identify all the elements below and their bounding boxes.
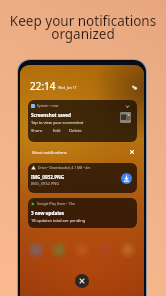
button[interactable]: Delete (69, 128, 82, 134)
staticText: Wed, Jan 17 (58, 85, 77, 90)
staticText: Tap to view your screenshot (31, 120, 84, 125)
staticText: Share (31, 128, 43, 134)
button[interactable]: Drive • Downloaded, 4.1 MB • 4m (28, 163, 137, 193)
staticText: 22:14 (30, 79, 56, 93)
staticText: 3 new updates (31, 210, 65, 216)
button[interactable]: Share (31, 128, 43, 134)
staticText: Google Play Store • 13m (37, 201, 76, 206)
staticText: Screenshot saved (31, 112, 72, 118)
staticText: Delete (69, 128, 82, 134)
staticText: System • now (37, 103, 59, 108)
staticText: Drive • Downloaded, 4.1 MB • 4m (38, 165, 91, 170)
button[interactable]: Google Play Store • 13m (28, 198, 137, 228)
button[interactable]: Expand notification (125, 104, 130, 109)
staticText: Keep your notifications organized (0, 12, 166, 43)
staticText: Silent notifications (32, 150, 67, 155)
button[interactable]: Edit (53, 128, 61, 134)
button[interactable]: Close (75, 274, 89, 288)
button[interactable]: Clear all (129, 149, 135, 155)
button[interactable]: Download (121, 173, 132, 184)
staticText: IMG_0932.PNG (31, 174, 65, 180)
button[interactable]: Quick settings (131, 84, 138, 91)
staticText: Edit (53, 128, 61, 134)
button[interactable]: System • now (28, 100, 137, 142)
staticText: 18 updates total are pending (31, 218, 86, 223)
staticText: IMG_0932.PNG (31, 181, 60, 186)
